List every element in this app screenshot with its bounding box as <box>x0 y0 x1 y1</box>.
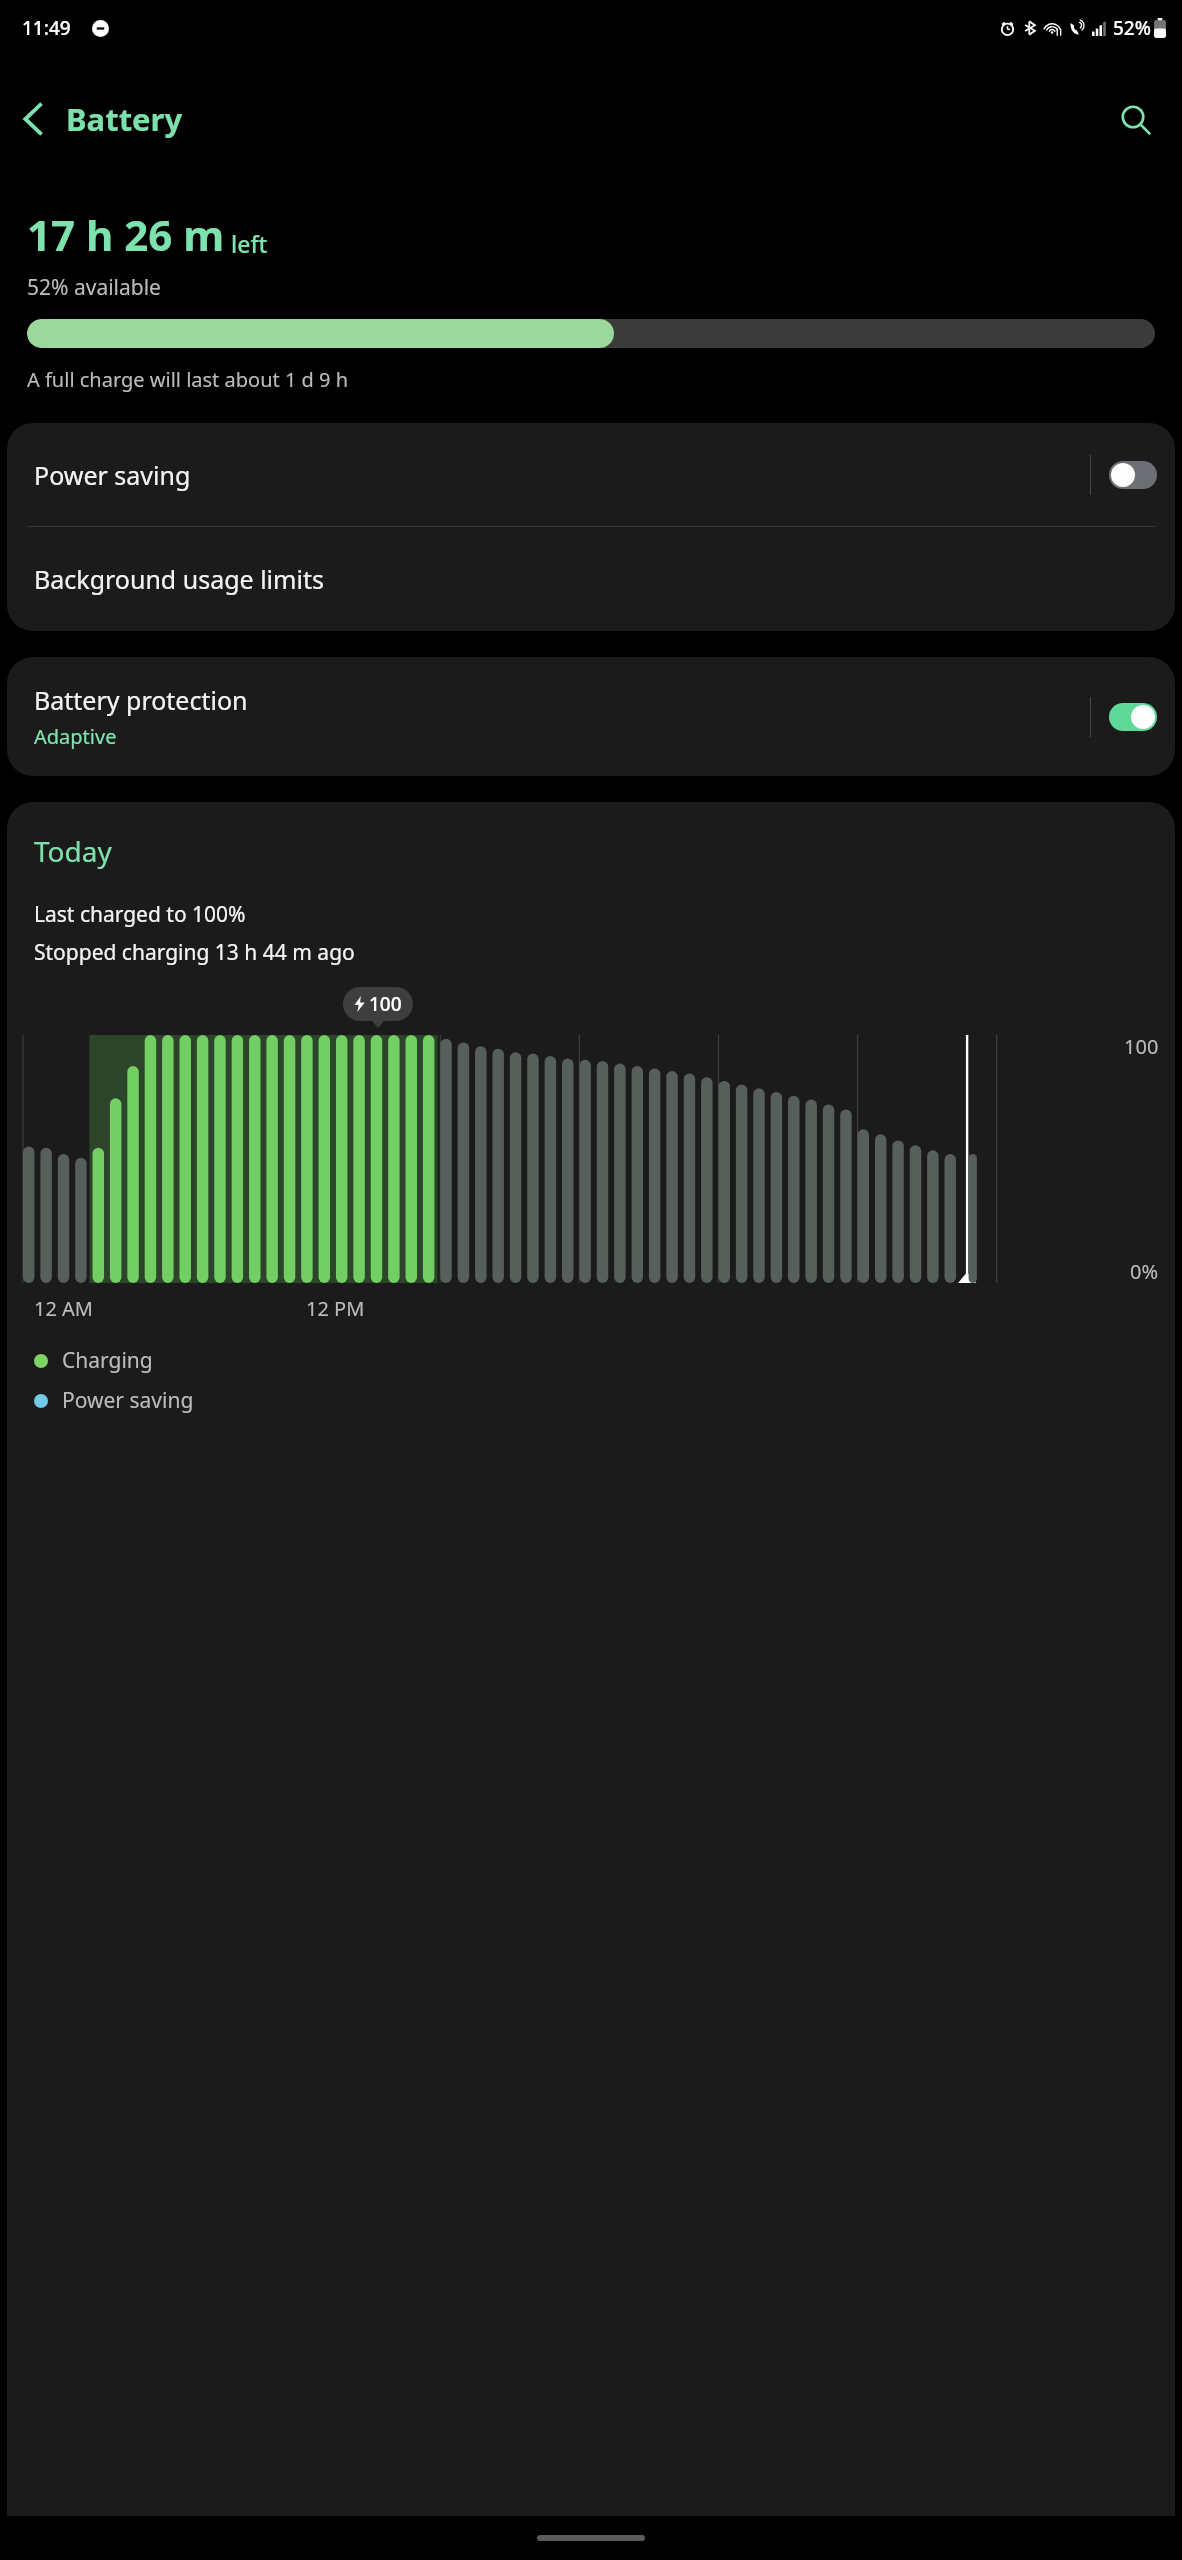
staticText: 11:49 <box>22 15 71 41</box>
staticText: A full charge will last about 1 d 9 h <box>27 366 349 393</box>
staticText: Last charged to 100% <box>34 900 246 929</box>
staticText: 100 <box>1124 1033 1159 1060</box>
staticText: Charging <box>62 1346 153 1375</box>
button[interactable]: Background usage limits <box>7 527 1175 631</box>
staticText: 0% <box>1130 1258 1159 1285</box>
staticText: Battery protection <box>34 683 248 717</box>
button[interactable]: Battery protection <box>7 657 1175 776</box>
staticText: 12 PM <box>306 1295 365 1322</box>
staticText: Stopped charging 13 h 44 m ago <box>34 938 355 967</box>
button[interactable]: Power saving <box>7 423 1175 526</box>
staticText: 100 <box>369 991 402 1017</box>
staticText: Adaptive <box>34 723 117 750</box>
staticText: Background usage limits <box>34 562 324 596</box>
staticText: Today <box>34 832 112 870</box>
staticText: Battery <box>66 98 183 140</box>
staticText: 12 AM <box>34 1295 93 1322</box>
staticText: 17 h 26 m <box>27 206 225 263</box>
staticText: left <box>231 228 268 259</box>
button[interactable]: Search <box>1104 88 1166 150</box>
staticText: 52% <box>1113 15 1151 41</box>
staticText: Power saving <box>34 458 1090 492</box>
button[interactable] <box>1109 461 1157 489</box>
button[interactable] <box>1109 703 1157 731</box>
staticText: 52% available <box>27 273 161 302</box>
button[interactable]: Back <box>0 87 64 151</box>
staticText: Power saving <box>62 1386 194 1415</box>
